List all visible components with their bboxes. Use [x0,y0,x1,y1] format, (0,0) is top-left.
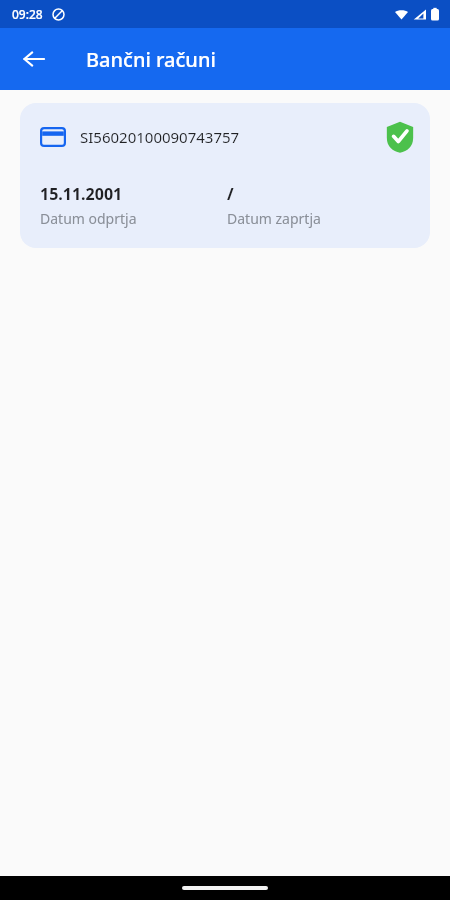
staticText: 09:28 [12,6,43,22]
staticText: Datum odprtja [40,209,137,228]
staticText: SI56020100090743757 [80,127,240,147]
button[interactable]: SI56020100090743757 [20,103,430,248]
staticText: Datum zaprtja [227,209,321,228]
staticText: / [227,183,234,205]
staticText: 15.11.2001 [40,183,123,205]
button[interactable]: Back [10,35,58,83]
staticText: Bančni računi [86,46,216,73]
